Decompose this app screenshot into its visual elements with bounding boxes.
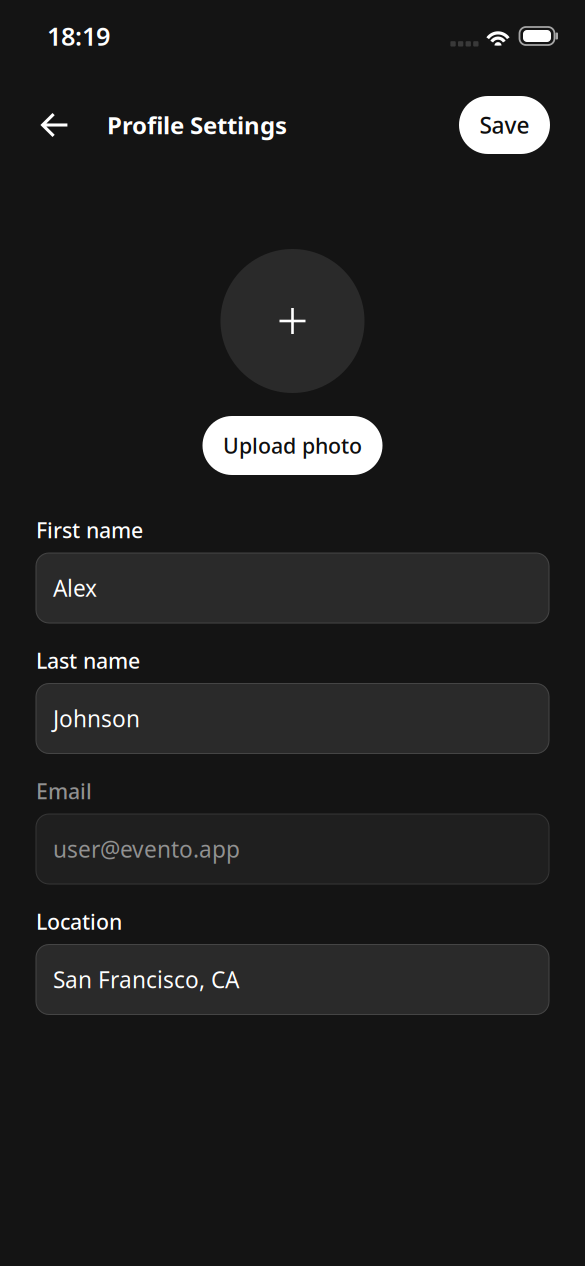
staticText: 18:19 [47, 19, 110, 53]
button[interactable]: San Francisco, CA [36, 944, 549, 1014]
button[interactable]: Johnson [36, 683, 549, 753]
button[interactable]: Upload photo [202, 416, 382, 475]
staticText: Location [36, 907, 122, 936]
button[interactable]: Add profile photo [220, 249, 364, 393]
staticText: Save [479, 110, 529, 140]
button[interactable]: Alex [36, 553, 549, 623]
staticText: San Francisco, CA [53, 964, 239, 994]
staticText: First name [36, 516, 143, 544]
staticText: user@evento.app [53, 834, 240, 864]
button[interactable]: Save [459, 96, 550, 154]
staticText: Upload photo [223, 431, 362, 460]
staticText: Last name [36, 646, 140, 675]
staticText: Johnson [53, 703, 140, 733]
button[interactable]: user@evento.app [36, 814, 549, 884]
button[interactable]: Back [41, 96, 85, 154]
staticText: Profile Settings [107, 109, 287, 141]
staticText: Alex [53, 573, 97, 603]
staticText: Email [36, 777, 92, 805]
